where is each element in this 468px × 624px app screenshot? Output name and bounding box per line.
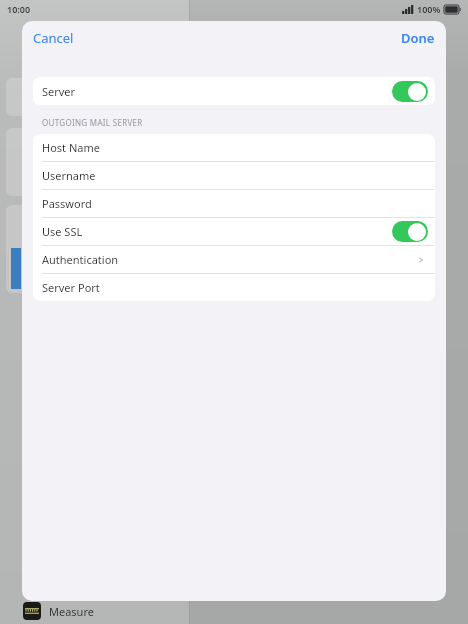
staticText: Use SSL	[42, 224, 83, 239]
button[interactable]: Measure	[20, 598, 185, 624]
staticText: Username	[42, 168, 96, 183]
button[interactable]: Use SSL	[33, 218, 435, 246]
staticText: Cancel	[33, 29, 74, 47]
staticText: Password	[42, 196, 92, 211]
staticText: 10:00	[7, 3, 31, 15]
staticText: Server Port	[42, 280, 100, 295]
button[interactable]: Username	[33, 162, 435, 190]
button[interactable]: Cancel	[22, 23, 85, 53]
staticText: Done	[401, 29, 435, 47]
button[interactable]: Toggle	[392, 81, 428, 102]
button[interactable]: Done	[390, 23, 446, 53]
staticText: 100%	[417, 3, 441, 15]
staticText: Server	[42, 84, 76, 99]
button[interactable]: Authentication	[33, 246, 435, 274]
button[interactable]: Toggle	[392, 221, 428, 242]
staticText: Host Name	[42, 140, 100, 155]
staticText: Measure	[49, 604, 94, 619]
button[interactable]: Server Port	[33, 274, 435, 301]
staticText: Authentication	[42, 252, 119, 267]
staticText: OUTGOING MAIL SERVER	[42, 117, 143, 128]
button[interactable]: Password	[33, 190, 435, 218]
other: Open Authentication	[417, 256, 425, 264]
button[interactable]: Host Name	[33, 134, 435, 162]
button[interactable]: Server	[33, 77, 435, 105]
